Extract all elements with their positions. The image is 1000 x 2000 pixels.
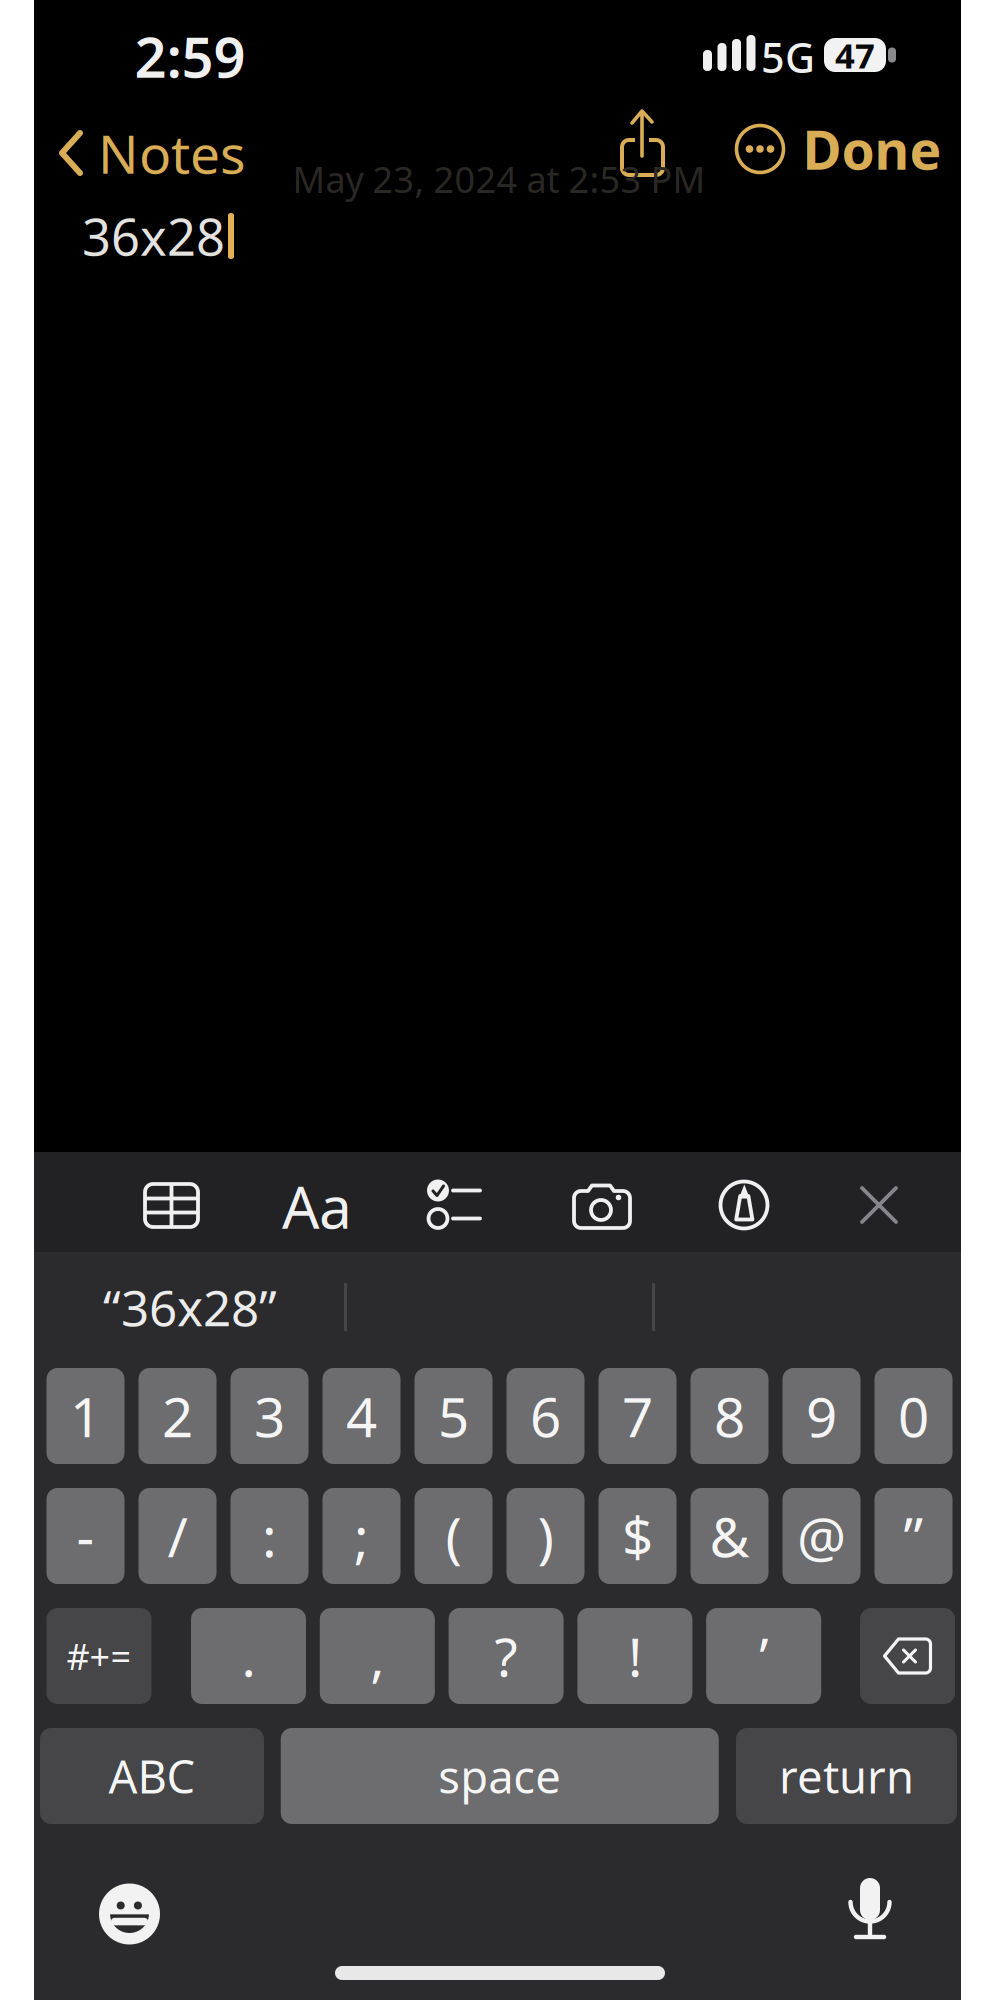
button[interactable]: ; xyxy=(322,1488,400,1584)
button[interactable]: ) xyxy=(506,1488,584,1584)
staticText: Notes xyxy=(98,118,246,188)
button[interactable]: Delete xyxy=(860,1608,955,1704)
staticText: ’ xyxy=(759,1621,768,1691)
staticText: May 23, 2024 at 2:53 PM xyxy=(292,155,705,203)
button[interactable]: Dismiss xyxy=(857,1183,901,1227)
staticText: 36x28 xyxy=(82,202,225,270)
button[interactable]: 2 xyxy=(138,1368,216,1464)
button[interactable]: 4 xyxy=(322,1368,400,1464)
staticText: ) xyxy=(537,1500,553,1572)
button[interactable]: ’ xyxy=(706,1608,821,1704)
button[interactable]: Emoji xyxy=(97,1882,161,1946)
staticText: 5 xyxy=(438,1380,469,1452)
staticText: : xyxy=(262,1500,277,1572)
staticText: ” xyxy=(903,1500,923,1572)
staticText: 6 xyxy=(530,1380,561,1452)
staticText: @ xyxy=(797,1500,846,1572)
staticText: 2 xyxy=(162,1380,193,1452)
staticText: ! xyxy=(628,1621,642,1691)
staticText: & xyxy=(709,1500,749,1572)
staticText: “36x28” xyxy=(103,1274,277,1340)
staticText: 9 xyxy=(806,1380,837,1452)
button[interactable]: . xyxy=(191,1608,306,1704)
button[interactable]: 5 xyxy=(414,1368,492,1464)
button[interactable]: @ xyxy=(782,1488,860,1584)
staticText: 2:59 xyxy=(134,19,245,93)
staticText: ABC xyxy=(108,1746,195,1806)
button[interactable]: Insert table xyxy=(142,1181,200,1229)
staticText: , xyxy=(370,1621,384,1691)
button[interactable]: 6 xyxy=(506,1368,584,1464)
button[interactable]: 3 xyxy=(230,1368,308,1464)
button[interactable]: - xyxy=(46,1488,124,1584)
button[interactable]: ” xyxy=(874,1488,952,1584)
button[interactable]: Notes xyxy=(27,123,277,183)
staticText: . xyxy=(241,1621,255,1691)
staticText: $ xyxy=(622,1500,653,1572)
button[interactable]: ( xyxy=(414,1488,492,1584)
staticText: 7 xyxy=(622,1380,653,1452)
button[interactable]: #+= xyxy=(46,1608,151,1704)
staticText: ? xyxy=(495,1621,518,1691)
button[interactable]: ABC xyxy=(40,1728,264,1824)
staticText: 0 xyxy=(898,1380,929,1452)
button[interactable]: “36x28” xyxy=(40,1257,340,1357)
staticText: Done xyxy=(802,114,941,184)
staticText: / xyxy=(167,1500,187,1572)
staticText: - xyxy=(76,1500,94,1572)
staticText: 47 xyxy=(835,32,875,78)
staticText: ; xyxy=(354,1500,369,1572)
button[interactable]: Insert photo xyxy=(572,1182,632,1232)
staticText: 1 xyxy=(70,1380,101,1452)
button[interactable]: Checklist xyxy=(426,1176,488,1234)
button[interactable]: 8 xyxy=(690,1368,768,1464)
button[interactable]: Done xyxy=(787,119,957,179)
button[interactable]: 0 xyxy=(874,1368,952,1464)
button[interactable]: Dictation xyxy=(840,1874,900,1946)
staticText: ( xyxy=(445,1500,461,1572)
button[interactable]: $ xyxy=(598,1488,676,1584)
button[interactable]: return xyxy=(736,1728,957,1824)
staticText: 3 xyxy=(254,1380,285,1452)
button[interactable]: More xyxy=(733,122,787,176)
button[interactable]: Text formatting xyxy=(272,1174,362,1238)
button[interactable]: 1 xyxy=(46,1368,124,1464)
button[interactable]: ? xyxy=(449,1608,564,1704)
staticText: 8 xyxy=(714,1380,745,1452)
button[interactable]: / xyxy=(138,1488,216,1584)
button[interactable]: space xyxy=(281,1728,719,1824)
button[interactable]: Share xyxy=(610,106,674,176)
button[interactable]: ! xyxy=(577,1608,692,1704)
button[interactable]: Markup xyxy=(717,1178,771,1232)
button[interactable]: 7 xyxy=(598,1368,676,1464)
staticText: #+= xyxy=(66,1632,131,1680)
staticText: Aa xyxy=(282,1167,352,1245)
staticText: return xyxy=(779,1746,914,1806)
button[interactable]: & xyxy=(690,1488,768,1584)
button[interactable]: , xyxy=(320,1608,435,1704)
staticText: 4 xyxy=(346,1380,377,1452)
button[interactable]: : xyxy=(230,1488,308,1584)
staticText: 5G xyxy=(761,30,815,84)
button[interactable]: 9 xyxy=(782,1368,860,1464)
staticText: space xyxy=(438,1746,561,1806)
